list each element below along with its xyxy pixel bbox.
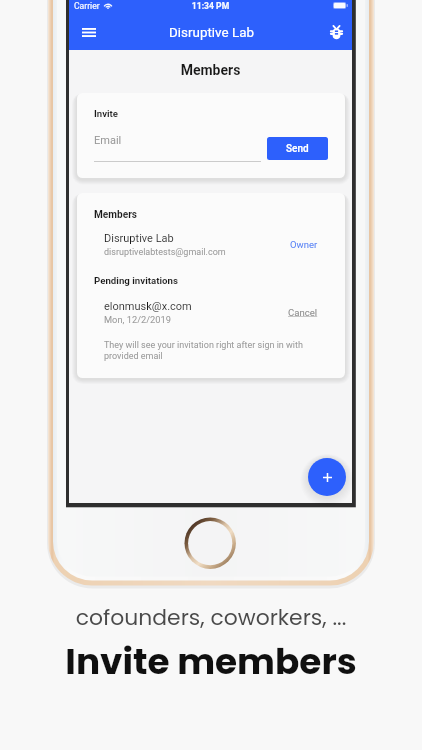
button[interactable]: Send bbox=[267, 137, 328, 160]
button[interactable]: Open navigation menu bbox=[74, 17, 104, 47]
staticText: Email bbox=[94, 134, 122, 147]
staticText: Carrier bbox=[74, 1, 100, 11]
staticText: Invite bbox=[94, 108, 118, 119]
staticText: Disruptive Lab bbox=[104, 232, 174, 245]
staticText: Pending invitations bbox=[94, 275, 178, 286]
staticText: 11:34 PM bbox=[69, 1, 352, 11]
staticText: Send bbox=[286, 143, 309, 155]
staticText: Members bbox=[94, 209, 138, 221]
staticText: elonmusk@x.com bbox=[104, 300, 192, 313]
staticText: Disruptive Lab bbox=[70, 25, 353, 41]
button[interactable]: Report a bug bbox=[321, 17, 351, 47]
staticText: cofounders, coworkers, ... bbox=[0, 602, 422, 633]
button[interactable]: Add member bbox=[308, 458, 346, 496]
staticText: They will see your invitation right afte… bbox=[104, 340, 303, 361]
staticText: Members bbox=[69, 62, 352, 78]
staticText: Invite members bbox=[0, 636, 422, 686]
button[interactable] bbox=[77, 229, 345, 257]
staticText: Mon, 12/2/2019 bbox=[104, 314, 171, 325]
staticText: disruptivelabtests@gmail.com bbox=[104, 247, 226, 258]
